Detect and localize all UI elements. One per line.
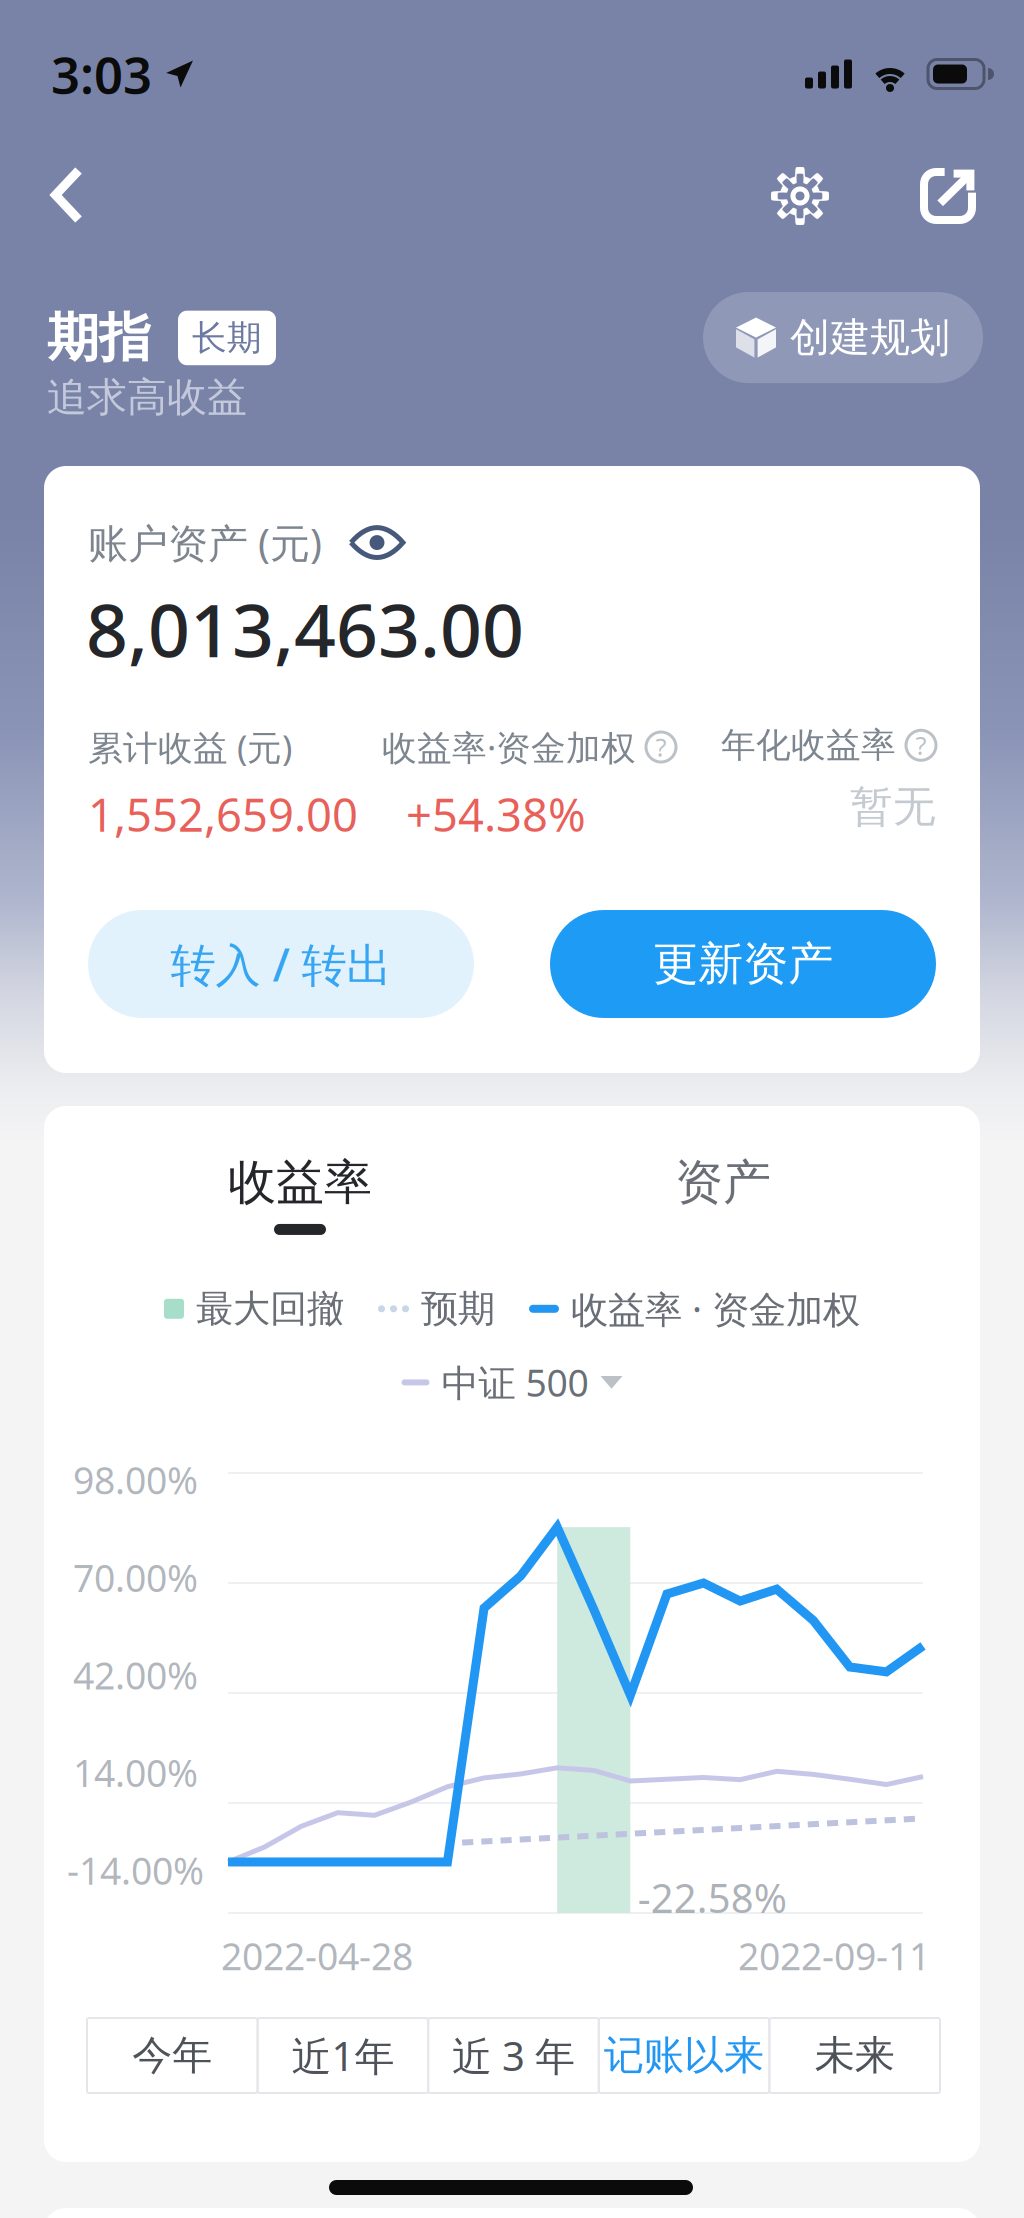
staticText: 70.00%	[73, 1553, 198, 1602]
staticText: 年化收益率	[721, 724, 896, 767]
staticText: 2022-09-11	[738, 1931, 930, 1981]
staticText: 8,013,463.00	[86, 580, 524, 677]
staticText: 中证 500	[441, 1358, 588, 1407]
staticText: 长期	[192, 317, 262, 359]
staticText: 1,552,659.00	[88, 784, 358, 844]
staticText: -14.00%	[67, 1845, 204, 1895]
staticText: 转入 / 转出	[170, 934, 391, 994]
button[interactable]: Share	[902, 150, 994, 242]
button[interactable]: 近1年	[258, 2018, 428, 2093]
staticText: 累计收益 (元)	[88, 724, 292, 770]
staticText: 3:03	[51, 40, 152, 108]
button[interactable]: 未来	[769, 2018, 940, 2093]
staticText: 预期	[421, 1286, 495, 1332]
button[interactable]: 今年	[87, 2018, 258, 2093]
button[interactable]: 收益率	[180, 1153, 420, 1235]
staticText: ?	[655, 730, 666, 764]
staticText: +54.38%	[406, 784, 586, 844]
button[interactable]: 更新资产	[550, 910, 936, 1018]
staticText: ?	[915, 728, 926, 762]
staticText: 期指	[47, 306, 151, 370]
staticText: 更新资产	[653, 936, 833, 992]
staticText: 今年	[132, 2031, 212, 2080]
button[interactable]: 转入 / 转出	[88, 910, 474, 1018]
staticText: -22.58%	[638, 1871, 787, 1924]
staticText: 98.00%	[73, 1455, 198, 1505]
staticText: 2022-04-28	[221, 1931, 413, 1981]
staticText: 42.00%	[73, 1650, 198, 1700]
staticText: 记账以来	[604, 2031, 764, 2080]
staticText: 14.00%	[73, 1748, 198, 1797]
staticText: 最大回撤	[196, 1286, 344, 1332]
button[interactable]: 近 3 年	[428, 2018, 599, 2093]
button[interactable]: 创建规划	[703, 292, 983, 383]
staticText: 未来	[815, 2031, 895, 2080]
staticText: 暂无	[850, 781, 936, 833]
staticText: 资产	[675, 1153, 771, 1212]
staticText: 创建规划	[790, 313, 950, 362]
staticText: 收益率	[228, 1153, 372, 1212]
staticText: 收益率·资金加权	[382, 724, 636, 770]
staticText: 近1年	[291, 2029, 394, 2082]
button[interactable]: 中证 500	[401, 1358, 622, 1407]
button[interactable]: Settings	[754, 150, 846, 242]
button[interactable]: 资产	[603, 1153, 843, 1235]
button[interactable]: Back	[22, 150, 112, 240]
staticText: 收益率 · 资金加权	[571, 1284, 860, 1334]
staticText: 追求高收益	[47, 373, 247, 422]
staticText: 账户资产 (元)	[88, 516, 322, 569]
button[interactable]: 记账以来	[599, 2018, 769, 2093]
staticText: 近 3 年	[452, 2029, 575, 2082]
